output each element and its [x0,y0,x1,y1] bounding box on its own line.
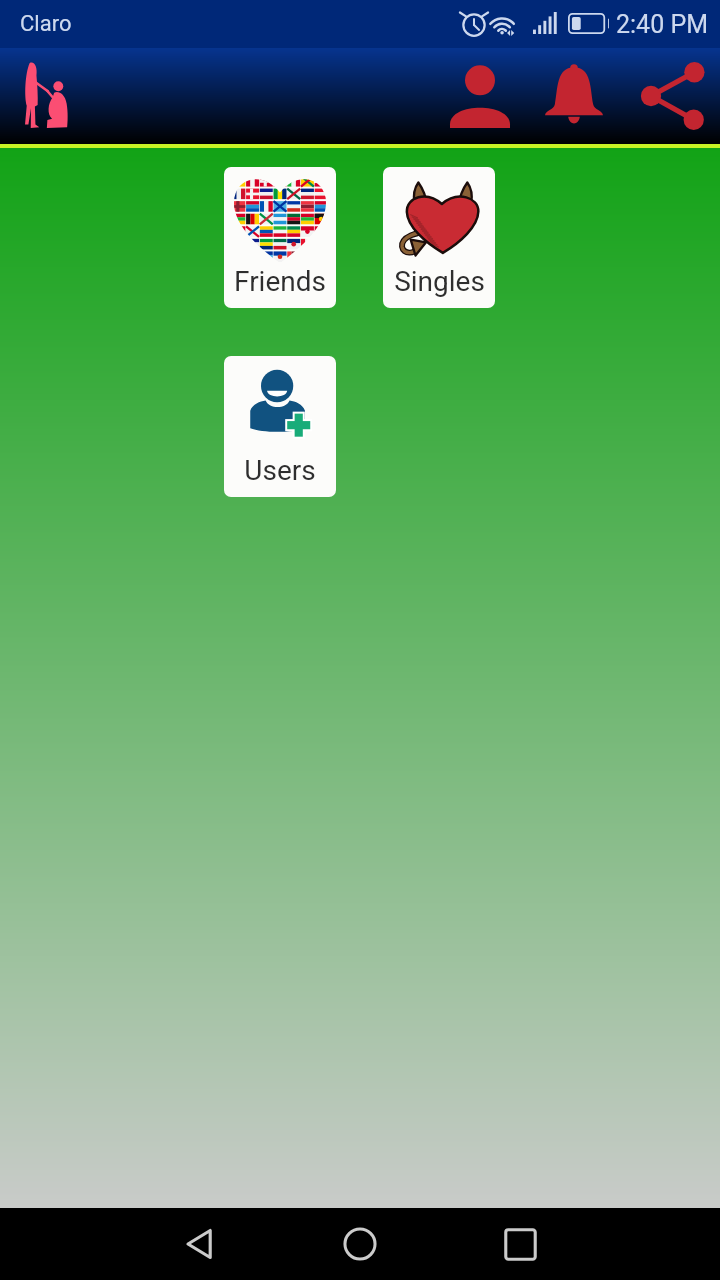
staticText: Users [244,454,316,487]
button[interactable]: Users [224,356,336,497]
staticText: Singles [394,265,485,298]
staticText: Claro [20,11,72,37]
button[interactable]: Home [18,60,70,132]
button[interactable]: Profile [438,54,522,138]
staticText: Friends [234,265,326,298]
button[interactable]: Home [330,1214,390,1274]
button[interactable]: Share [630,54,714,138]
button[interactable]: Back [170,1214,230,1274]
button[interactable]: Friends [224,167,336,308]
button[interactable]: Notifications [532,54,616,138]
button[interactable]: Recents [490,1214,550,1274]
button[interactable]: Singles [383,167,495,308]
staticText: 2:40 PM [616,10,709,39]
